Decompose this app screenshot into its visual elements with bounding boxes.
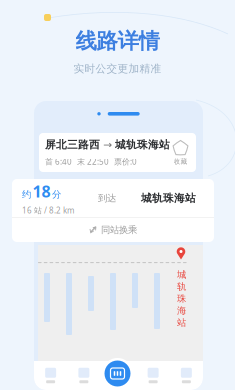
button[interactable]: 同站换乘 — [12, 218, 214, 242]
staticText: 到达 — [98, 192, 116, 204]
staticText: 分 — [52, 189, 61, 200]
staticText: 18 — [32, 181, 50, 202]
staticText: 轨 — [177, 281, 186, 292]
button[interactable]: Tab — [34, 364, 67, 387]
staticText: 海 — [177, 305, 186, 316]
staticText: 首 6:40 — [45, 156, 72, 167]
staticText: 屏北三路西 — [45, 138, 100, 151]
button[interactable]: Bus routes — [102, 358, 133, 389]
staticText: 城 — [177, 269, 186, 280]
staticText: 实时公交更加精准 — [73, 62, 161, 75]
staticText: 站 — [177, 317, 186, 328]
staticText: 城轨珠海站 — [141, 192, 196, 205]
staticText: 票价:0 — [114, 156, 137, 167]
staticText: 收藏 — [173, 157, 187, 166]
staticText: → — [103, 139, 112, 151]
button[interactable]: 屏北三路西 — [39, 133, 196, 172]
button[interactable]: Tab — [67, 364, 100, 387]
staticText: 末 22:50 — [77, 156, 109, 167]
staticText: 珠 — [177, 293, 186, 304]
staticText: 约 — [22, 189, 31, 200]
staticText: 线路详情 — [75, 28, 159, 54]
staticText: 城轨珠海站 — [115, 138, 170, 151]
button[interactable]: Tab — [170, 364, 203, 387]
staticText: 同站换乘 — [101, 224, 137, 236]
button[interactable]: Tab — [136, 364, 170, 387]
staticText: 16 站 / 8.2 km — [22, 205, 74, 216]
